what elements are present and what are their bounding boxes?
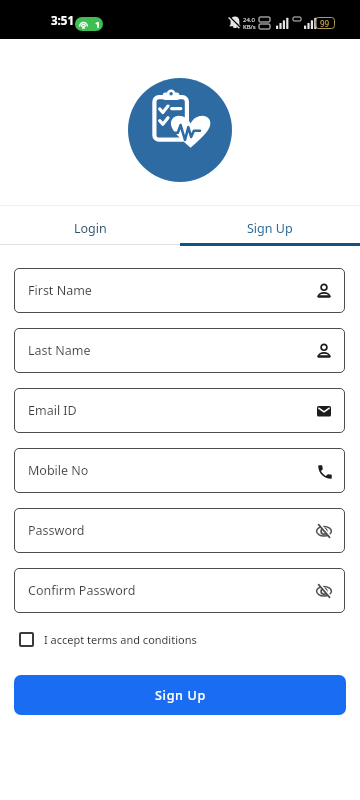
staticText: 99 bbox=[320, 18, 330, 29]
button[interactable]: Confirm Password bbox=[14, 568, 345, 613]
button[interactable]: Login bbox=[0, 205, 180, 244]
staticText: 24.0 bbox=[243, 16, 255, 24]
button[interactable]: Last Name bbox=[14, 328, 345, 373]
staticText: Sign Up bbox=[247, 220, 293, 237]
button[interactable]: Sign Up bbox=[180, 205, 360, 244]
staticText: First Name bbox=[28, 282, 92, 299]
staticText: Password bbox=[28, 522, 85, 539]
staticText: Email ID bbox=[28, 402, 77, 419]
button[interactable]: Password bbox=[14, 508, 345, 553]
button[interactable]: Sign Up bbox=[14, 675, 346, 715]
staticText: 3:51 bbox=[51, 13, 74, 29]
button[interactable]: Mobile No bbox=[14, 448, 345, 493]
button[interactable]: First Name bbox=[14, 268, 345, 313]
button[interactable]: Email ID bbox=[14, 388, 345, 433]
staticText: Mobile No bbox=[28, 462, 89, 479]
staticText: Login bbox=[74, 220, 107, 237]
staticText: 1 bbox=[95, 18, 101, 30]
staticText: KB/s bbox=[243, 23, 256, 31]
button[interactable]: I accept terms and conditions bbox=[19, 628, 197, 650]
staticText: Sign Up bbox=[155, 687, 206, 704]
staticText: Last Name bbox=[28, 342, 91, 359]
staticText: Confirm Password bbox=[28, 582, 136, 599]
staticText: I accept terms and conditions bbox=[44, 632, 197, 647]
